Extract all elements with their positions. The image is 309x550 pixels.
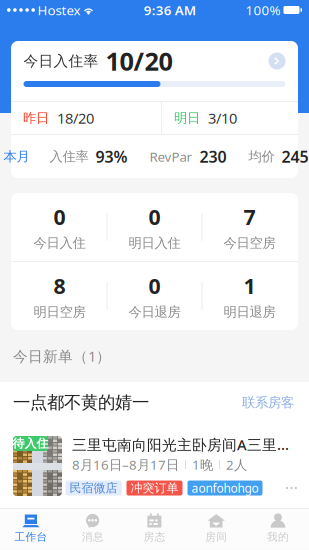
button[interactable]: 我的 xyxy=(247,509,309,550)
staticText: 民宿微店 xyxy=(69,481,117,495)
staticText: 100% xyxy=(245,1,280,19)
button[interactable]: 0 xyxy=(12,205,106,248)
staticText: 7 xyxy=(243,203,255,231)
staticText: 房间 xyxy=(205,530,227,543)
button[interactable]: 待入住 xyxy=(0,436,309,501)
staticText: 今日入住率 xyxy=(23,52,98,70)
staticText: 3/10 xyxy=(208,108,237,128)
staticText: 待入住 xyxy=(12,436,48,451)
button[interactable]: 工作台 xyxy=(0,509,62,550)
button[interactable]: 1 xyxy=(202,274,296,317)
staticText: 冲突订单 xyxy=(130,481,178,495)
staticText: 明日退房 xyxy=(223,304,275,320)
button[interactable]: More options xyxy=(280,480,302,495)
staticText: 一点都不黄的婧一 xyxy=(13,392,149,413)
staticText: 联系房客 xyxy=(242,394,294,411)
staticText: 今日入住 xyxy=(33,235,85,251)
staticText: 均价 xyxy=(248,148,274,165)
staticText: 我的 xyxy=(267,530,289,543)
staticText: 今日退房 xyxy=(128,304,180,320)
staticText: 今日空房 xyxy=(223,235,275,251)
staticText: 0 xyxy=(148,203,160,231)
staticText: aonfohohgo xyxy=(191,480,258,496)
staticText: 明日 xyxy=(174,110,200,126)
staticText: 8 xyxy=(53,272,65,300)
staticText: 消息 xyxy=(82,530,104,543)
staticText: 明日空房 xyxy=(33,304,85,320)
button[interactable]: 0 xyxy=(107,274,201,317)
staticText: 1晚 xyxy=(192,456,213,473)
staticText: 8月16日–8月17日 xyxy=(72,456,179,473)
staticText: 18/20 xyxy=(57,108,94,128)
staticText: 明日入住 xyxy=(128,235,180,251)
button[interactable]: 0 xyxy=(107,205,201,248)
staticText: 入住率 xyxy=(49,148,88,165)
staticText: 9:36 AM xyxy=(144,1,196,19)
staticText: 93% xyxy=(95,146,127,167)
staticText: 2人 xyxy=(226,456,247,473)
button[interactable]: 7 xyxy=(202,205,296,248)
staticText: 今日新单（1） xyxy=(13,346,111,366)
button[interactable]: 房态 xyxy=(124,509,185,550)
button[interactable]: 昨日 xyxy=(11,102,161,134)
button[interactable]: 房间 xyxy=(185,509,247,550)
staticText: 三里屯南向阳光主卧房间A三里屯... xyxy=(72,435,296,454)
staticText: 工作台 xyxy=(14,530,47,543)
button[interactable]: 8 xyxy=(12,274,106,317)
staticText: 10/20 xyxy=(105,44,172,78)
staticText: RevPar xyxy=(149,148,192,165)
staticText: 昨日 xyxy=(23,110,49,126)
staticText: 230 xyxy=(199,146,226,167)
staticText: 房态 xyxy=(143,530,165,543)
staticText: 本月 xyxy=(3,148,29,165)
button[interactable]: 今日入住率 xyxy=(11,41,298,101)
staticText: Hostex xyxy=(37,1,80,19)
staticText: 0 xyxy=(148,272,160,300)
button[interactable]: 明日 xyxy=(162,102,298,134)
staticText: 0 xyxy=(53,203,65,231)
button[interactable]: 联系房客 xyxy=(240,391,296,413)
staticText: 1 xyxy=(243,272,255,300)
button[interactable]: 消息 xyxy=(62,509,124,550)
staticText: 245 xyxy=(281,146,308,167)
